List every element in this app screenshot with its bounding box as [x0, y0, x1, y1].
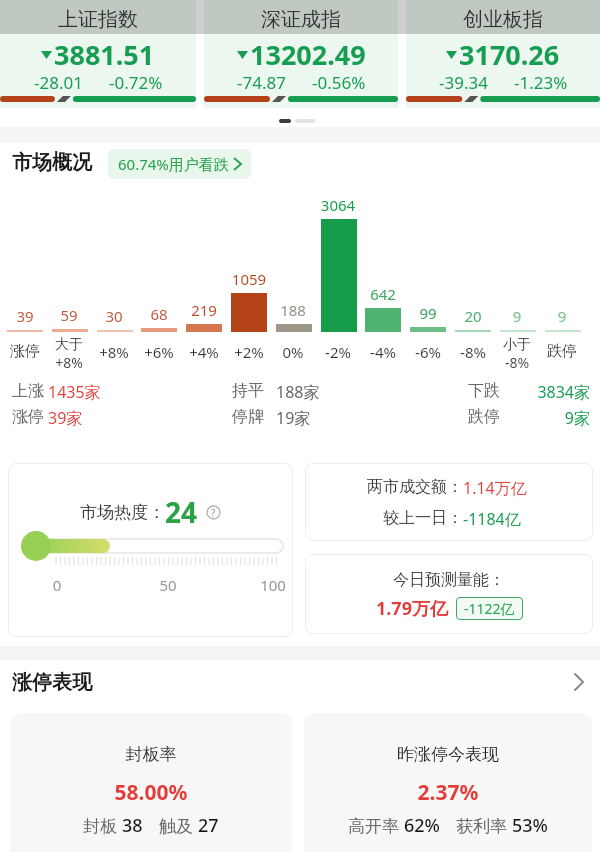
button[interactable]: 涨停表现	[0, 668, 600, 696]
staticText: 188家	[276, 381, 320, 403]
staticText: 188	[263, 300, 323, 320]
staticText: 涨停	[0, 342, 55, 361]
staticText: 跌停	[468, 407, 500, 427]
staticText: 创业板指	[406, 7, 600, 32]
staticText: 39家	[48, 407, 83, 429]
staticText: -4%	[353, 342, 413, 362]
staticText: -1122亿	[464, 599, 515, 618]
staticText: -1.23%	[514, 71, 568, 94]
staticText: 触及	[159, 814, 198, 837]
staticText: 9	[487, 306, 547, 326]
staticText: 较上一日：	[383, 508, 463, 528]
staticText: 大于 +8%	[39, 336, 99, 372]
staticText: 小于 -8%	[487, 336, 547, 372]
staticText: 39	[0, 306, 55, 326]
staticText: 20	[443, 306, 503, 326]
button[interactable]: 今日预测量能：	[305, 554, 593, 634]
staticText: 24	[165, 493, 198, 531]
staticText: 27	[198, 813, 219, 838]
staticText: 1.79万亿	[376, 596, 448, 621]
staticText: 60.74%用户看跌	[118, 154, 229, 174]
staticText: ?	[211, 506, 216, 520]
staticText: 封板率	[10, 744, 292, 765]
staticText: 封板	[83, 814, 122, 837]
staticText: 50	[158, 575, 178, 595]
staticText: 9家	[0, 407, 590, 429]
staticText: 高开率	[348, 814, 404, 837]
staticText: 下跌	[468, 381, 500, 401]
button[interactable]: 深证成指	[204, 0, 398, 108]
staticText: 0	[50, 575, 64, 595]
staticText: 58.00%	[10, 778, 292, 807]
staticText: 38	[122, 813, 143, 838]
staticText: 停牌	[232, 407, 264, 427]
staticText: 市场概况	[12, 150, 92, 175]
staticText: 642	[353, 284, 413, 304]
staticText: 持平	[232, 381, 264, 401]
staticText: +2%	[219, 342, 279, 362]
staticText: 19家	[276, 407, 311, 429]
button[interactable]: 市场热度：	[8, 463, 293, 637]
staticText: 涨停	[12, 407, 44, 427]
button[interactable]: 上证指数	[0, 0, 196, 108]
staticText: 53%	[512, 813, 548, 838]
staticText: 获利率	[456, 814, 512, 837]
staticText: 跌停	[532, 342, 592, 361]
staticText: -0.72%	[109, 71, 163, 94]
staticText: 上证指数	[0, 7, 196, 32]
staticText: -8%	[443, 342, 503, 362]
staticText: 100	[260, 575, 286, 595]
staticText: -74.87	[237, 71, 286, 94]
staticText: 3170.26	[459, 36, 560, 73]
staticText: 市场热度：	[80, 502, 165, 523]
staticText: 2.37%	[304, 778, 592, 807]
staticText: -0.56%	[312, 71, 366, 94]
button[interactable]: 创业板指	[406, 0, 600, 108]
staticText: 1435家	[48, 381, 101, 403]
staticText: 1059	[219, 269, 279, 289]
staticText: 62%	[404, 813, 440, 838]
button[interactable]: 封板率	[10, 713, 292, 852]
staticText: -28.01	[34, 71, 83, 94]
staticText: 1.14万亿	[463, 477, 527, 499]
button[interactable]: 两市成交额：	[305, 463, 593, 541]
staticText: 9	[532, 306, 592, 326]
staticText: 两市成交额：	[367, 477, 463, 497]
staticText: 13202.49	[250, 36, 366, 73]
staticText: 219	[174, 300, 234, 320]
staticText: 涨停表现	[12, 670, 92, 695]
button[interactable]: 昨涨停今表现	[304, 713, 592, 852]
staticText: +4%	[174, 342, 234, 362]
staticText: 30	[84, 306, 144, 326]
staticText: 68	[129, 304, 189, 324]
button[interactable]: 60.74%用户看跌	[108, 149, 251, 179]
staticText: -1184亿	[463, 508, 521, 530]
staticText: 59	[39, 305, 99, 325]
staticText: 深证成指	[204, 7, 398, 32]
staticText: +8%	[84, 342, 144, 362]
staticText: -39.34	[439, 71, 488, 94]
staticText: +6%	[129, 342, 189, 362]
staticText: 3881.51	[54, 36, 155, 73]
staticText: -2%	[308, 342, 368, 362]
staticText: -6%	[398, 342, 458, 362]
staticText: 昨涨停今表现	[304, 744, 592, 765]
staticText: 3834家	[0, 381, 590, 403]
staticText: 今日预测量能：	[305, 570, 593, 590]
staticText: 99	[398, 303, 458, 323]
staticText: 3064	[308, 195, 368, 215]
staticText: 上涨	[12, 381, 44, 401]
staticText: 0%	[263, 342, 323, 362]
